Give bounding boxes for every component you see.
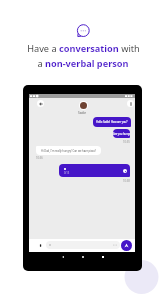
button[interactable]: Back xyxy=(59,253,67,261)
staticText: 10:36 xyxy=(36,156,43,160)
staticText: 10:35 xyxy=(123,140,130,144)
staticText: a non-verbal person xyxy=(37,57,129,70)
staticText: Are you hungry? xyxy=(113,132,130,136)
staticText: Hi Dad, I'm really hungry! Can we have p… xyxy=(41,149,96,153)
button[interactable]: Send xyxy=(121,240,132,251)
button[interactable]: Voice input xyxy=(38,243,43,248)
staticText: Have a conversation with xyxy=(27,42,140,55)
button[interactable]: 0:15 xyxy=(59,164,130,177)
button[interactable]: Are you hungry? xyxy=(113,129,130,138)
staticText: 0:15 xyxy=(64,171,70,175)
staticText: 10:38 xyxy=(123,179,130,183)
button[interactable]: Recents xyxy=(99,253,107,261)
button[interactable] xyxy=(46,241,120,249)
button[interactable]: Back xyxy=(37,100,44,107)
staticText: Hello Sadie! How are you? xyxy=(96,120,128,124)
button[interactable]: More options xyxy=(127,100,134,107)
button[interactable]: Hi Dad, I'm really hungry! Can we have p… xyxy=(36,146,101,155)
button[interactable]: Hello Sadie! How are you? xyxy=(93,117,131,127)
staticText: Sadie xyxy=(78,111,87,115)
button[interactable]: Home xyxy=(79,253,87,261)
